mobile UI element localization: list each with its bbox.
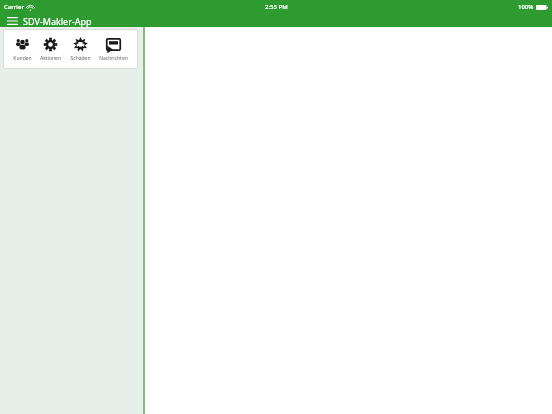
- button[interactable]: Kunden: [12, 34, 33, 65]
- staticText: 2:55 PM: [265, 3, 288, 11]
- button[interactable]: Aktionen: [39, 34, 62, 65]
- staticText: Nachrichten: [99, 55, 128, 62]
- staticText: SDV-Makler-App: [23, 15, 92, 27]
- button[interactable]: Nachrichten: [98, 34, 129, 65]
- staticText: Carrier: [4, 3, 24, 11]
- staticText: Kunden: [13, 55, 32, 62]
- button[interactable]: Menü öffnen: [5, 15, 19, 27]
- staticText: 100%: [518, 3, 534, 11]
- staticText: Aktionen: [40, 55, 61, 62]
- staticText: Schäden: [70, 55, 91, 62]
- button[interactable]: Schäden: [69, 34, 92, 65]
